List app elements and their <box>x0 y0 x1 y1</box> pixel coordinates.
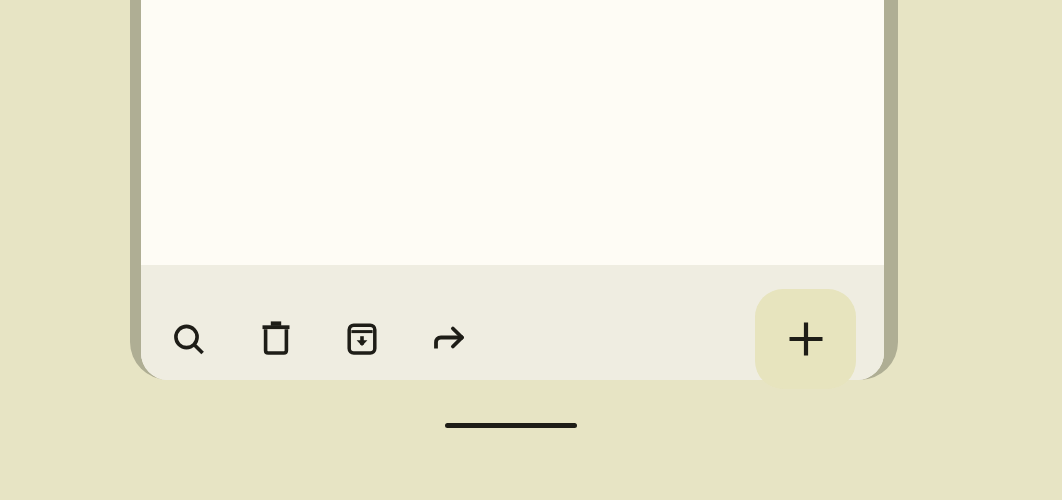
button[interactable]: Forward <box>425 315 473 363</box>
button[interactable]: Archive <box>338 315 386 363</box>
button[interactable]: Delete <box>252 315 300 363</box>
button[interactable]: Add <box>755 289 856 389</box>
other: Add <box>782 315 830 363</box>
button[interactable]: Search <box>164 315 212 363</box>
